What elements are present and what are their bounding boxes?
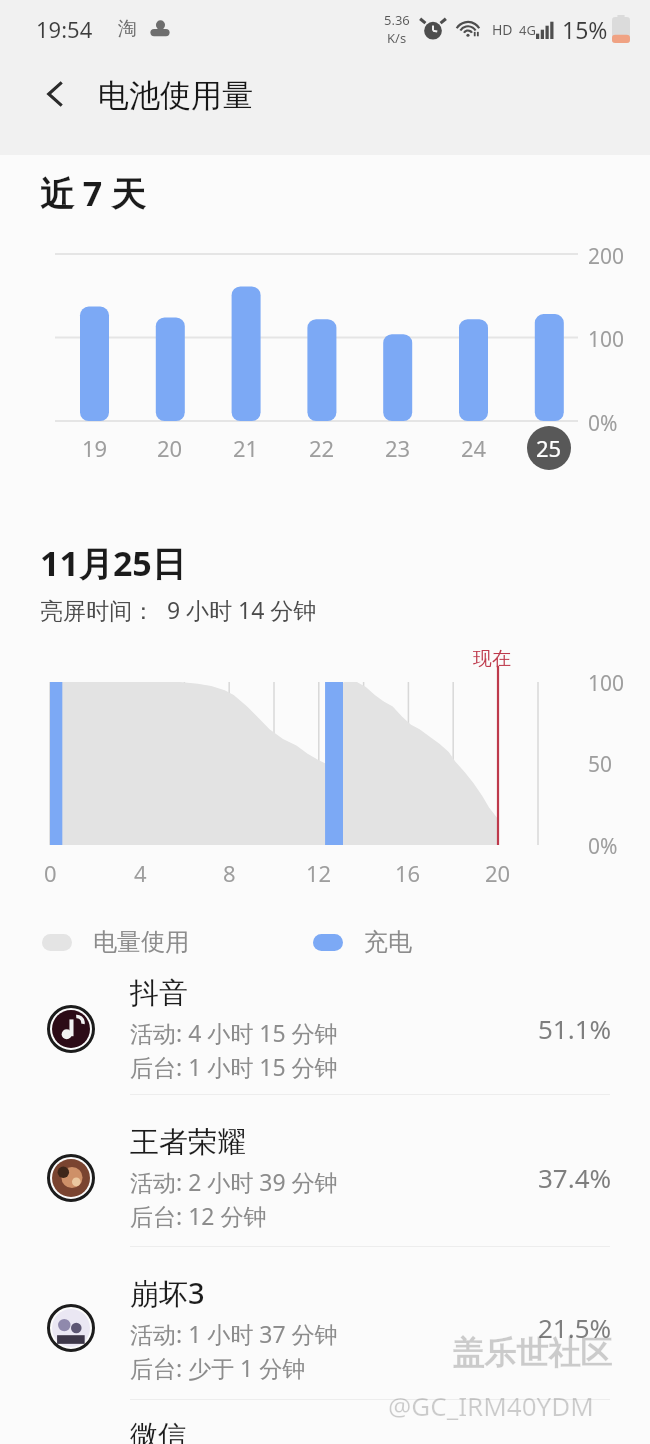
staticText: 0% [588, 409, 618, 438]
staticText: 0% [588, 832, 618, 861]
staticText: 12 [306, 858, 332, 888]
staticText: 活动: 1 小时 37 分钟 [130, 1318, 338, 1349]
staticText: 5.36 [384, 11, 410, 29]
staticText: 充电 [364, 927, 412, 957]
button[interactable]: 崩坏3 [0, 1262, 650, 1393]
staticText: 活动: 4 小时 15 分钟 [130, 1017, 338, 1048]
staticText: 4G [519, 21, 536, 39]
staticText: 8 [223, 858, 236, 888]
staticText: 亮屏时间： 9 小时 14 分钟 [40, 594, 317, 625]
staticText: 25 [536, 433, 562, 463]
staticText: 22 [309, 433, 335, 463]
staticText: 16 [395, 858, 421, 888]
staticText: 37.4% [538, 1160, 612, 1195]
staticText: 23 [385, 433, 411, 463]
staticText: 0 [44, 858, 57, 888]
staticText: 后台: 1 小时 15 分钟 [130, 1051, 338, 1082]
staticText: 200 [588, 242, 625, 271]
button[interactable]: 25 [527, 426, 571, 470]
staticText: 11月25日 [40, 540, 186, 586]
button[interactable]: 21 [224, 426, 268, 470]
button[interactable]: 20 [148, 426, 192, 470]
staticText: HD [492, 20, 513, 39]
button[interactable]: 24 [452, 426, 496, 470]
staticText: 微信 [130, 1418, 186, 1444]
button[interactable]: 19 [73, 426, 117, 470]
staticText: 近 7 天 [40, 170, 146, 216]
staticText: K/s [387, 29, 407, 47]
button[interactable]: 王者荣耀 [0, 1112, 650, 1243]
staticText: 后台: 少于 1 分钟 [130, 1352, 306, 1383]
staticText: 100 [588, 669, 625, 698]
staticText: 50 [588, 750, 613, 779]
staticText: 24 [461, 433, 487, 463]
button[interactable]: 抖音 [0, 963, 650, 1094]
staticText: 王者荣耀 [130, 1124, 246, 1161]
staticText: 电量使用 [93, 927, 189, 957]
button[interactable]: 22 [300, 426, 344, 470]
staticText: 崩坏3 [130, 1273, 205, 1313]
staticText: 19:54 [36, 14, 93, 44]
staticText: 20 [157, 433, 183, 463]
staticText: 盖乐世社区 [452, 1333, 612, 1373]
button[interactable]: 23 [376, 426, 420, 470]
staticText: 15% [562, 14, 608, 45]
staticText: @GC_IRM40YDM [388, 1388, 594, 1423]
staticText: 淘 [118, 17, 137, 41]
staticText: 抖音 [130, 975, 188, 1012]
staticText: 21.5% [538, 1310, 612, 1345]
staticText: 电池使用量 [98, 76, 253, 115]
staticText: 19 [82, 433, 108, 463]
staticText: 100 [588, 325, 625, 354]
staticText: 现在 [473, 647, 511, 671]
staticText: 活动: 2 小时 39 分钟 [130, 1166, 338, 1197]
staticText: 20 [485, 858, 511, 888]
button[interactable]: Back [28, 66, 84, 122]
staticText: 51.1% [538, 1011, 612, 1046]
staticText: 4 [134, 858, 147, 888]
staticText: 后台: 12 分钟 [130, 1200, 267, 1231]
staticText: 21 [233, 433, 259, 463]
